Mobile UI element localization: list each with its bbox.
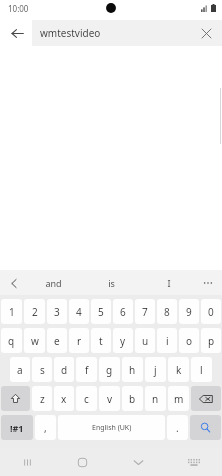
button[interactable]: English (UK) [58, 415, 165, 440]
staticText: 9 [186, 305, 192, 319]
staticText: l [200, 363, 203, 377]
staticText: !#1 [10, 422, 24, 434]
button[interactable]: I [140, 270, 198, 295]
button[interactable]: Backspace [191, 386, 221, 411]
button[interactable]: j [145, 357, 166, 382]
button[interactable]: Recent apps [0, 448, 55, 476]
staticText: w [31, 334, 39, 348]
staticText: 5 [98, 305, 104, 319]
staticText: 3 [54, 305, 60, 319]
staticText: a [17, 363, 23, 377]
staticText: 10:00 [8, 3, 29, 14]
button[interactable]: Change keyboard [166, 448, 222, 476]
button[interactable]: a [10, 357, 30, 382]
button[interactable]: p [201, 328, 221, 353]
staticText: v [107, 392, 113, 406]
staticText: m [174, 392, 184, 406]
staticText: x [61, 392, 67, 406]
button[interactable]: Previous suggestions [2, 271, 26, 295]
staticText: 8 [164, 305, 170, 319]
button[interactable]: 6 [113, 299, 133, 324]
button[interactable]: Clear text [196, 23, 216, 43]
button[interactable]: wmtestvideo [32, 20, 222, 46]
button[interactable]: Back [4, 20, 30, 46]
staticText: q [8, 334, 15, 348]
button[interactable]: 3 [47, 299, 67, 324]
staticText: e [54, 334, 60, 348]
button[interactable]: 0 [201, 299, 221, 324]
button[interactable]: o [179, 328, 199, 353]
button[interactable]: r [69, 328, 89, 353]
staticText: r [77, 334, 82, 348]
staticText: u [142, 334, 149, 348]
button[interactable]: Shift [1, 386, 30, 411]
button[interactable]: s [32, 357, 52, 382]
staticText: 0 [208, 305, 214, 319]
button[interactable]: z [32, 386, 52, 411]
staticText: o [186, 334, 193, 348]
staticText: English (UK) [92, 423, 132, 433]
staticText: z [40, 392, 45, 406]
button[interactable]: Home [55, 448, 110, 476]
staticText: y [120, 334, 126, 348]
button[interactable]: y [113, 328, 133, 353]
button[interactable]: k [168, 357, 189, 382]
button[interactable]: g [99, 357, 120, 382]
button[interactable]: 9 [179, 299, 199, 324]
button[interactable]: t [91, 328, 111, 353]
button[interactable]: d [54, 357, 74, 382]
button[interactable]: b [122, 386, 143, 411]
button[interactable]: is [82, 270, 140, 295]
staticText: c [84, 392, 89, 406]
button[interactable]: Search [190, 415, 221, 440]
staticText: p [208, 334, 215, 348]
button[interactable]: 1 [1, 299, 22, 324]
button[interactable]: Hide keyboard [110, 448, 166, 476]
staticText: . [176, 421, 179, 435]
button[interactable]: 8 [157, 299, 177, 324]
button[interactable]: !#1 [1, 415, 33, 440]
staticText: wmtestvideo [40, 26, 101, 40]
staticText: 4 [76, 305, 82, 319]
button[interactable]: x [54, 386, 74, 411]
staticText: and [45, 277, 62, 289]
button[interactable]: e [47, 328, 67, 353]
staticText: 7 [142, 305, 148, 319]
button[interactable]: v [99, 386, 120, 411]
staticText: 1 [9, 305, 15, 319]
staticText: j [154, 363, 157, 377]
button[interactable]: w [24, 328, 45, 353]
button[interactable]: . [167, 415, 188, 440]
button[interactable]: and [24, 270, 82, 295]
button[interactable]: More options [197, 272, 219, 294]
staticText: s [40, 363, 45, 377]
staticText: b [129, 392, 136, 406]
button[interactable]: i [157, 328, 177, 353]
button[interactable]: 7 [135, 299, 155, 324]
staticText: 2 [32, 305, 38, 319]
staticText: f [85, 363, 89, 377]
button[interactable]: h [122, 357, 143, 382]
staticText: 6 [120, 305, 126, 319]
staticText: , [44, 421, 47, 435]
button[interactable]: m [168, 386, 189, 411]
button[interactable]: f [76, 357, 97, 382]
button[interactable]: l [191, 357, 212, 382]
button[interactable]: 5 [91, 299, 111, 324]
staticText: t [99, 334, 103, 348]
staticText: i [166, 334, 169, 348]
staticText: d [61, 363, 68, 377]
staticText: g [106, 363, 113, 377]
button[interactable]: n [145, 386, 166, 411]
staticText: n [152, 392, 159, 406]
button[interactable]: , [35, 415, 56, 440]
staticText: h [129, 363, 136, 377]
button[interactable]: 2 [24, 299, 45, 324]
button[interactable]: c [76, 386, 97, 411]
staticText: is [108, 277, 115, 289]
button[interactable]: u [135, 328, 155, 353]
button[interactable]: q [1, 328, 22, 353]
staticText: I [167, 277, 171, 289]
button[interactable]: 4 [69, 299, 89, 324]
staticText: k [176, 363, 182, 377]
